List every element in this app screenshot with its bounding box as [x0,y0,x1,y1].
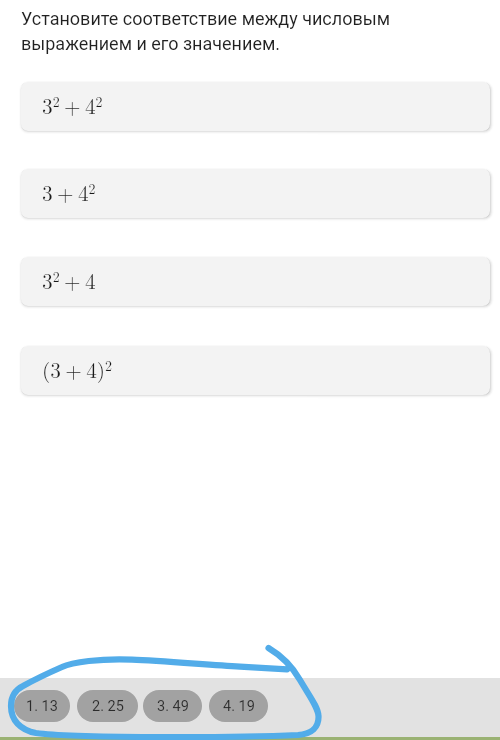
button[interactable]: 32 + 4 [21,257,490,306]
button[interactable]: 4. 19 [209,690,268,722]
staticText: 3. 49 [157,698,189,715]
staticText: 3 + 42 [42,177,96,207]
button[interactable]: (3 + 4)2 [21,346,490,395]
staticText: 32 + 42 [42,90,103,120]
staticText: 32 + 4 [42,265,96,295]
button[interactable]: 32 + 42 [21,82,490,131]
button[interactable]: 3 + 42 [21,169,490,218]
staticText: Установите соответствие между числовым в… [21,8,451,54]
button[interactable]: 3. 49 [143,690,202,722]
staticText: (3 + 4)2 [42,354,113,384]
button[interactable]: 2. 25 [77,690,138,722]
staticText: 4. 19 [223,698,255,715]
button[interactable]: 1. 13 [14,690,70,722]
staticText: 2. 25 [92,698,124,715]
staticText: 1. 13 [26,698,58,715]
